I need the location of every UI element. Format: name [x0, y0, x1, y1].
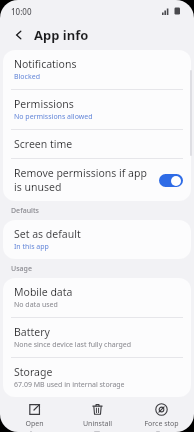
button[interactable]: Storage [3, 358, 191, 397]
staticText: Notifications [14, 57, 77, 71]
staticText: Remove permissions if app is unused [14, 166, 153, 194]
button[interactable]: Back [10, 26, 28, 44]
staticText: 67.09 MB used in internal storage [14, 380, 125, 390]
staticText: Storage [14, 365, 53, 379]
staticText: App info [34, 26, 89, 44]
button[interactable]: Mobile data [3, 278, 191, 317]
button[interactable]: Remove permissions if app is unused [3, 159, 191, 201]
button[interactable]: Open [4, 397, 64, 432]
staticText: Usage [11, 264, 32, 274]
button[interactable]: Remove permissions toggle [159, 174, 183, 187]
staticText: Uninstall [83, 419, 112, 429]
staticText: Permissions [14, 97, 74, 111]
button[interactable]: Screen time [3, 130, 191, 158]
staticText: No permissions allowed [14, 112, 93, 122]
staticText: Set as default [14, 227, 81, 241]
staticText: Force stop [144, 419, 179, 429]
staticText: Open [25, 419, 44, 429]
staticText: Blocked [14, 72, 40, 82]
staticText: Defaults [11, 206, 39, 216]
staticText: Screen time [14, 137, 73, 151]
staticText: No data used [14, 300, 58, 310]
button[interactable]: Notifications [3, 50, 191, 89]
staticText: None since device last fully charged [14, 340, 132, 350]
button[interactable]: Uninstall [67, 397, 127, 432]
staticText: Mobile data [14, 285, 73, 299]
staticText: 10:00 [11, 6, 32, 17]
button[interactable]: Set as default [3, 220, 191, 259]
button[interactable]: Force stop [131, 397, 191, 432]
button[interactable]: Permissions [3, 90, 191, 129]
staticText: Battery [14, 325, 50, 339]
button[interactable]: Battery [3, 318, 191, 357]
staticText: In this app [14, 242, 49, 252]
